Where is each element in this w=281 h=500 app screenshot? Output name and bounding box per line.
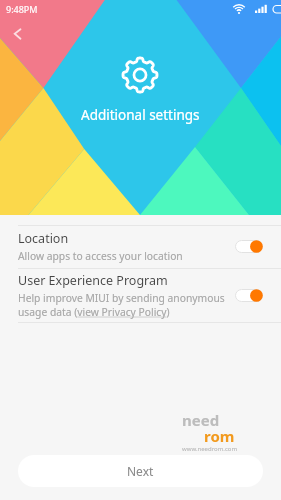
staticText: Next [127, 463, 154, 479]
staticText: Help improve MIUI by sending anonymous [18, 291, 225, 305]
staticText: User Experience Program [18, 272, 168, 289]
staticText: rom [204, 426, 235, 446]
button[interactable]: User Experience Program [0, 268, 281, 322]
button[interactable]: Location [0, 225, 281, 268]
staticText: Additional settings [81, 106, 200, 124]
button[interactable]: Next [18, 455, 263, 487]
button[interactable]: Toggle Location [235, 240, 263, 253]
staticText: need [182, 410, 220, 430]
staticText: 9:48PM [6, 3, 38, 15]
staticText: usage data (view Privacy Policy) [18, 305, 170, 319]
button[interactable]: Toggle User Experience Program [235, 289, 263, 302]
staticText: Location [18, 230, 69, 247]
button[interactable]: Back [4, 22, 28, 46]
staticText: Allow apps to access your location [18, 249, 183, 263]
staticText: www.needrom.com [182, 445, 238, 453]
